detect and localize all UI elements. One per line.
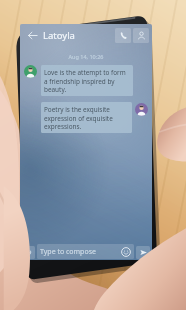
button[interactable]: Latoyla [43,29,115,42]
staticText: Aug 14, 10:26 [24,53,148,60]
staticText: Type to compose [40,247,120,257]
button[interactable]: Send [136,246,150,259]
button[interactable]: Love is the attempt to form a friendship… [41,65,133,96]
staticText: Love is the attempt to form a friendship… [44,68,130,93]
button[interactable]: Emoji [120,246,131,257]
button[interactable]: Attach [22,246,35,259]
button[interactable]: Contact info [133,28,149,43]
button[interactable] [135,103,148,116]
button[interactable]: Back [23,26,41,44]
button[interactable]: Call [115,28,131,43]
button[interactable]: Poetry is the exquisite expression of ex… [41,102,132,133]
button[interactable]: Type to compose [37,244,134,259]
staticText: Poetry is the exquisite expression of ex… [44,105,129,130]
button[interactable] [24,65,37,78]
